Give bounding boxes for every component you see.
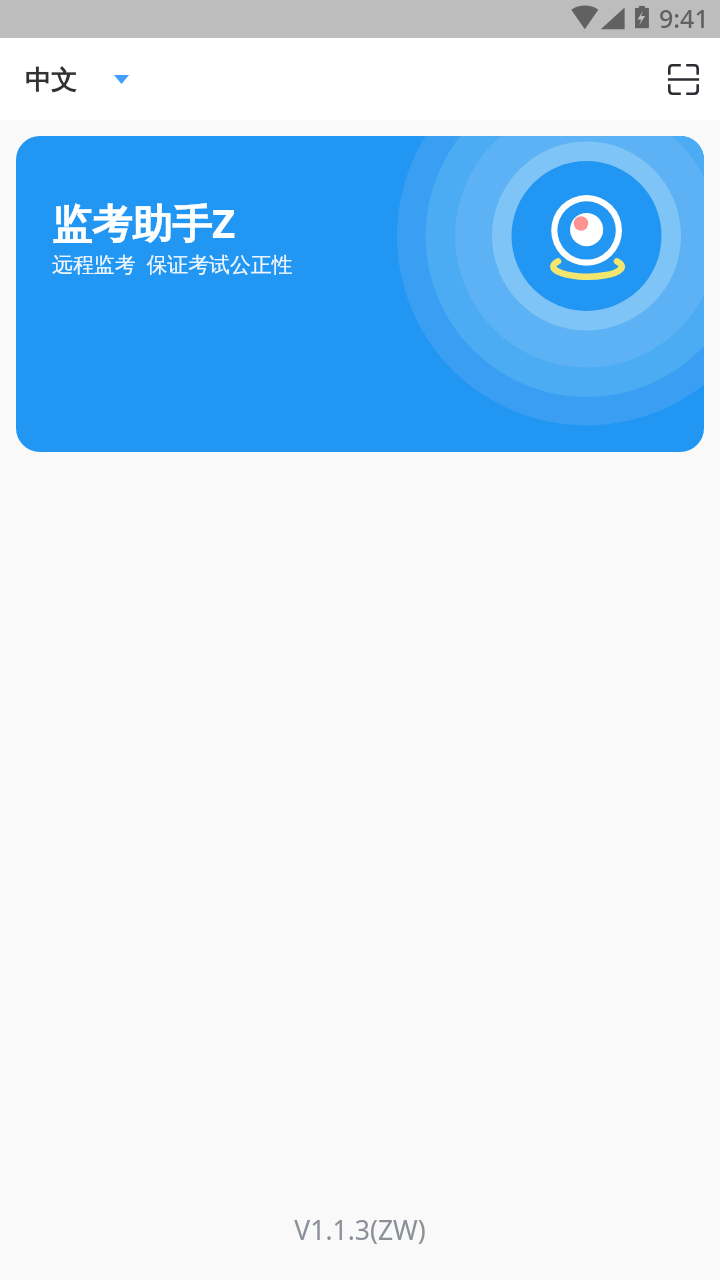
button[interactable]: Scan QR code	[657, 53, 709, 105]
staticText: 远程监考 保证考试公正性	[52, 250, 293, 279]
staticText: 监考助手Z	[52, 195, 236, 250]
button[interactable]: 中文	[0, 49, 151, 109]
button[interactable]: 监考助手Z	[16, 136, 704, 452]
staticText: 中文	[25, 64, 77, 97]
staticText: 9:41	[659, 1, 709, 35]
staticText: V1.1.3(ZW)	[0, 1212, 720, 1248]
